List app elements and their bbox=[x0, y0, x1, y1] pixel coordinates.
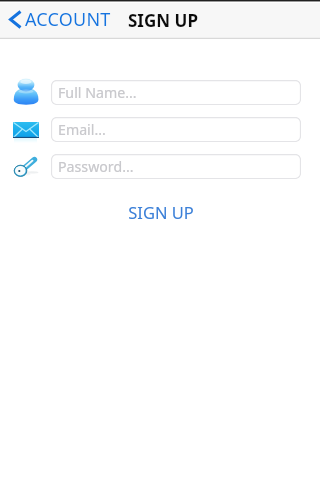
button[interactable]: Email... bbox=[51, 117, 301, 142]
other: Password bbox=[12, 155, 40, 180]
staticText: SIGN UP bbox=[128, 201, 194, 223]
other: Email bbox=[13, 122, 39, 138]
staticText: SIGN UP bbox=[128, 9, 198, 32]
button[interactable]: ACCOUNT bbox=[0, 0, 117, 37]
staticText: Password... bbox=[58, 157, 134, 176]
staticText: Email... bbox=[58, 120, 106, 139]
other: Name bbox=[12, 77, 40, 106]
button[interactable]: Password... bbox=[51, 154, 301, 179]
button[interactable]: Full Name... bbox=[51, 80, 301, 105]
staticText: ACCOUNT bbox=[25, 7, 111, 32]
staticText: Full Name... bbox=[58, 83, 137, 102]
button[interactable]: SIGN UP bbox=[112, 199, 209, 225]
